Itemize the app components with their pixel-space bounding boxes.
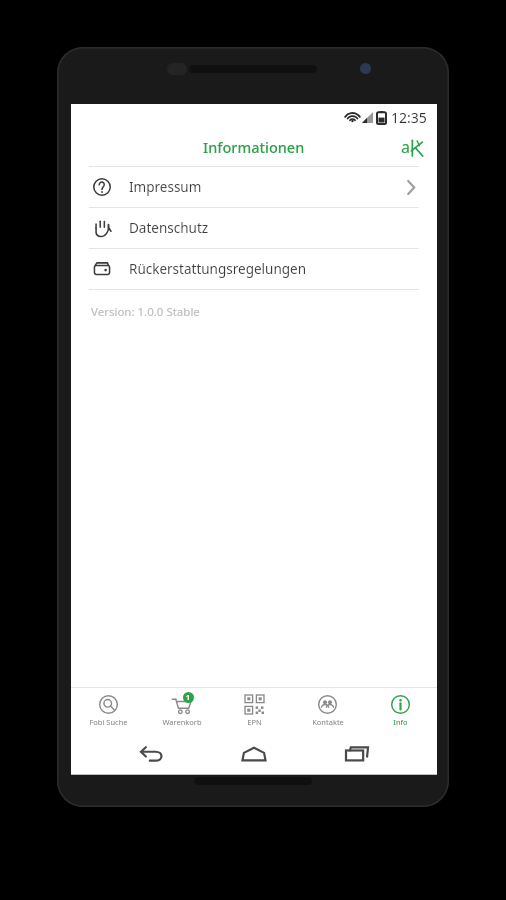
staticText: Informationen <box>203 137 305 157</box>
button[interactable]: Rückerstattungsregelungen <box>71 249 437 289</box>
button[interactable]: Recent apps <box>335 734 379 774</box>
staticText: Rückerstattungsregelungen <box>129 260 306 278</box>
staticText: a <box>401 136 410 158</box>
staticText: Info <box>393 717 408 727</box>
button[interactable]: Home <box>232 734 276 774</box>
button[interactable]: Datenschutz <box>71 208 437 248</box>
button[interactable]: Impressum <box>71 167 437 207</box>
staticText: Warenkorb <box>162 717 202 727</box>
button[interactable]: Fobi Suche <box>71 695 145 727</box>
staticText: Version: 1.0.0 Stable <box>91 304 200 320</box>
staticText: 12:35 <box>391 108 427 127</box>
staticText: Datenschutz <box>129 219 209 237</box>
staticText: EPN <box>247 717 262 727</box>
button[interactable]: EPN <box>218 695 291 727</box>
button[interactable]: Kontakte <box>291 695 364 727</box>
button[interactable]: AK Logo <box>397 135 427 159</box>
button[interactable]: Info <box>364 695 437 727</box>
staticText: 1 <box>186 693 191 703</box>
staticText: Fobi Suche <box>89 717 128 727</box>
staticText: Kontakte <box>312 717 344 727</box>
staticText: Impressum <box>129 178 202 196</box>
button[interactable]: Back <box>130 734 174 774</box>
button[interactable]: 1 <box>145 695 218 727</box>
